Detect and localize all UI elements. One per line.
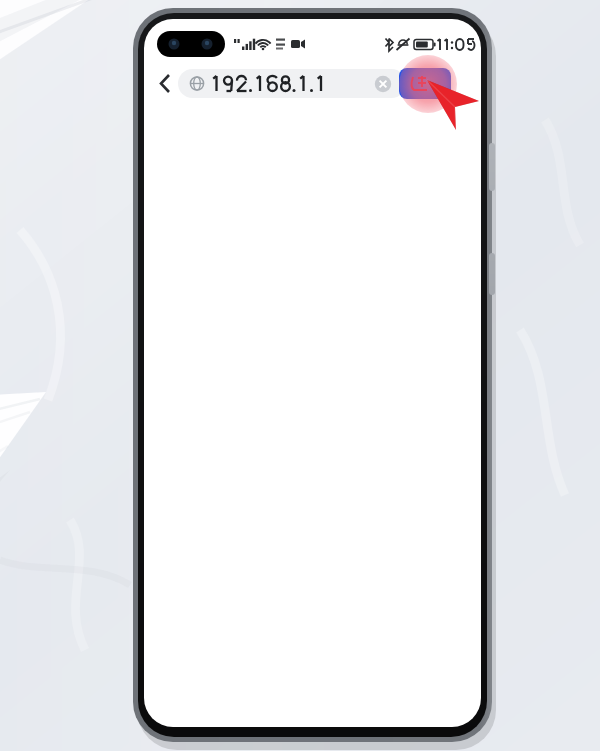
button[interactable]: Go: [399, 68, 451, 99]
button[interactable]: Address bar 192.168.1.1: [178, 69, 406, 98]
button[interactable]: Clear address: [373, 73, 397, 97]
button[interactable]: Back: [152, 68, 180, 98]
